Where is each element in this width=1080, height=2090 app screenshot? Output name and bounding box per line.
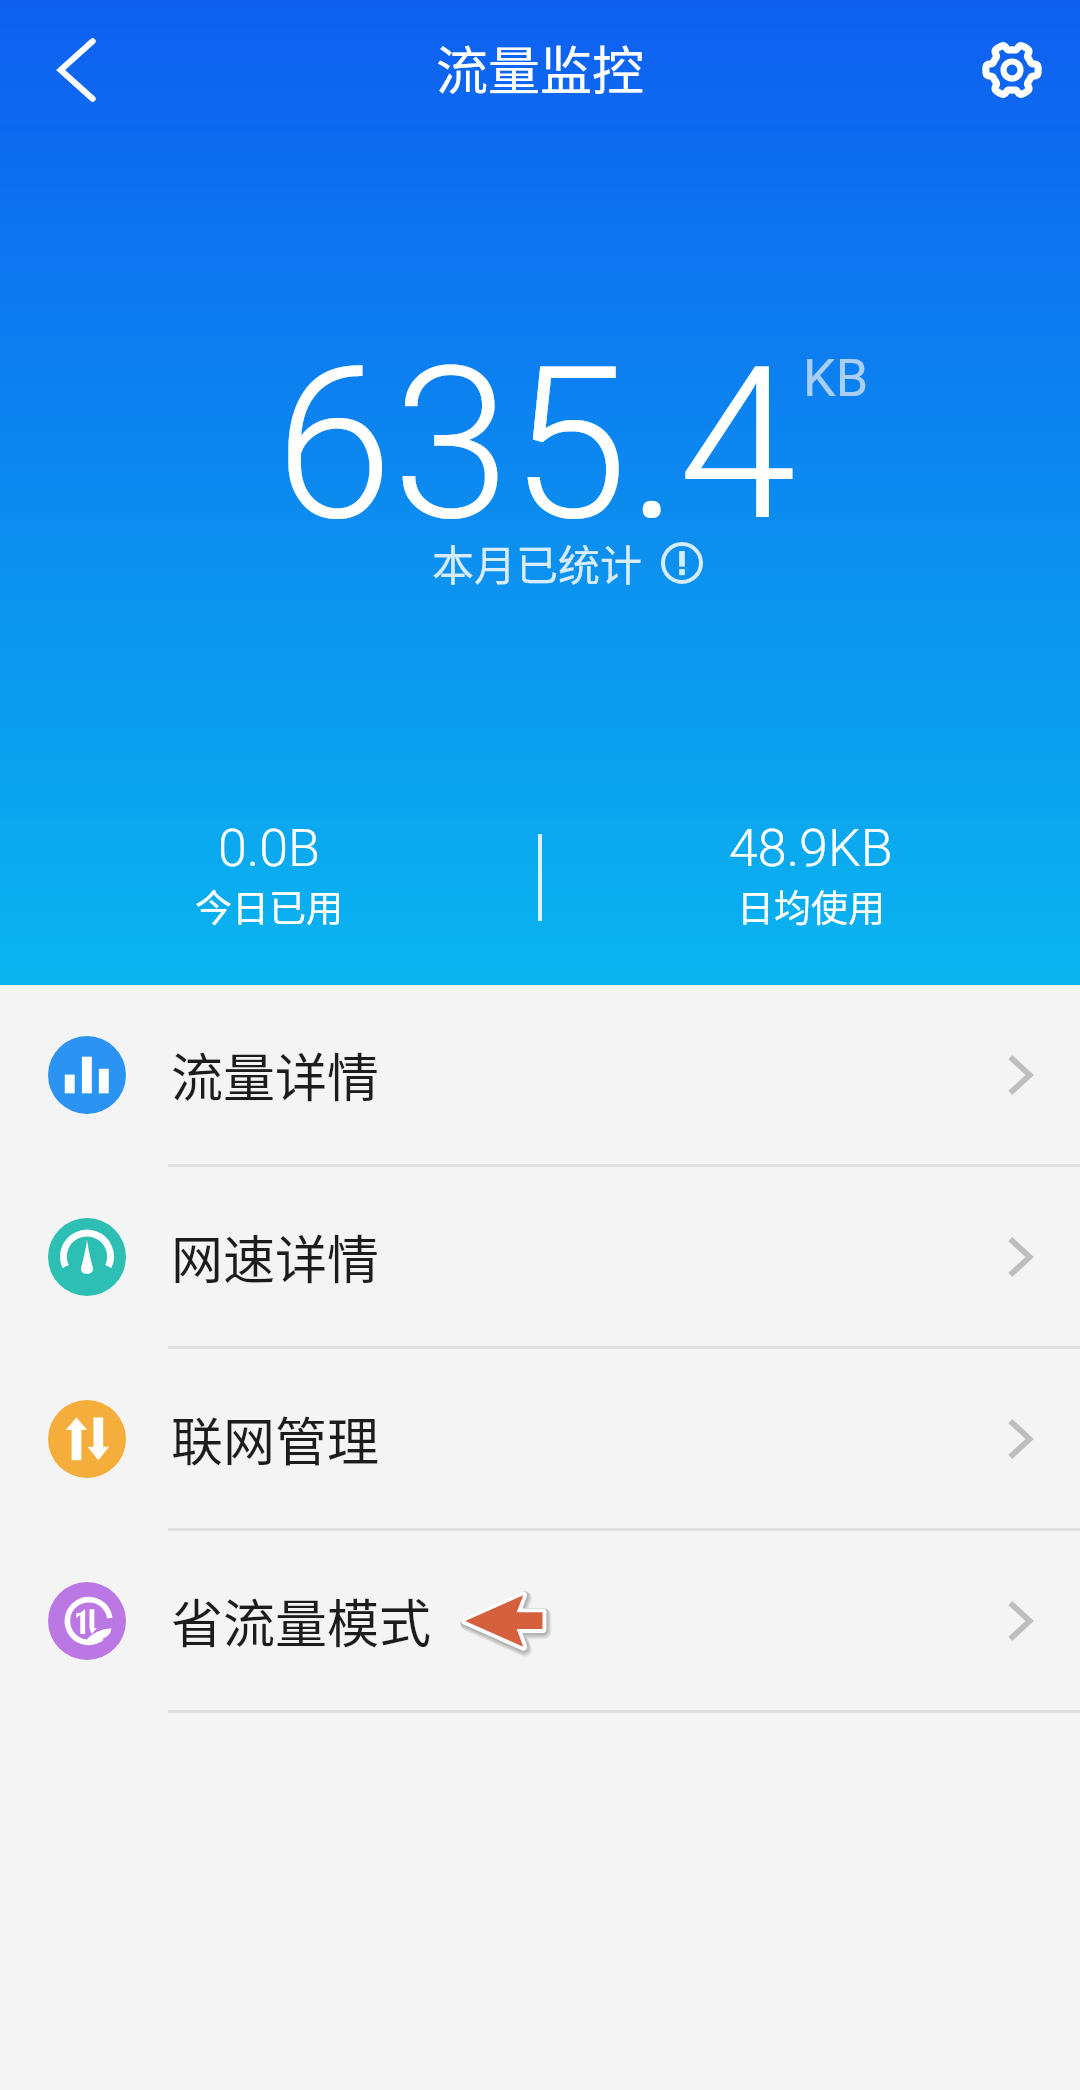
button[interactable]: 省流量模式 [0,1531,1080,1710]
button[interactable]: Back [30,24,122,116]
staticText: 日均使用 [737,879,885,933]
button[interactable]: 网速详情 [0,1167,1080,1346]
staticText: KB [803,348,869,409]
staticText: 网速详情 [171,1219,380,1294]
staticText: 今日已用 [195,879,343,933]
staticText: 635.4 [275,320,796,568]
button[interactable]: 流量详情 [0,985,1080,1164]
staticText: 48.9KB [729,818,893,879]
staticText: 流量监控 [436,30,645,105]
staticText: 流量详情 [171,1037,380,1112]
staticText: 省流量模式 [171,1583,432,1658]
button[interactable]: 联网管理 [0,1349,1080,1528]
button[interactable]: Settings [966,24,1058,116]
staticText: 联网管理 [171,1401,380,1476]
staticText: 本月已统计 [432,532,643,593]
staticText: 0.0B [218,818,320,879]
